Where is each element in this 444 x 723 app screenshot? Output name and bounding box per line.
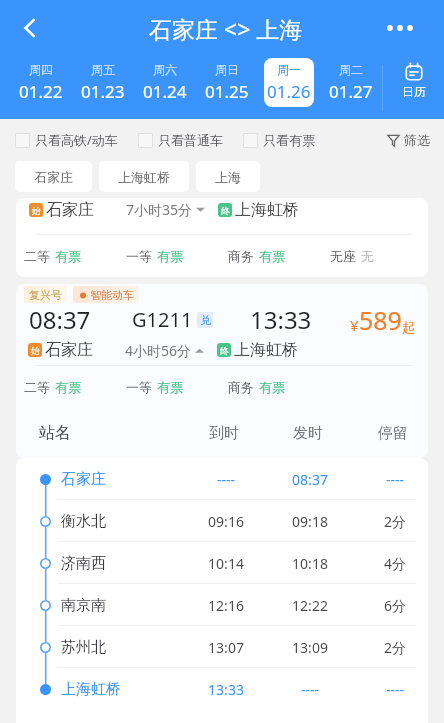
button[interactable]: 始 bbox=[16, 198, 428, 277]
staticText: 13:33 bbox=[198, 680, 254, 699]
staticText: 上海虹桥 bbox=[118, 169, 170, 185]
button[interactable]: 周一 bbox=[264, 58, 314, 107]
staticText: 只看有票 bbox=[263, 132, 315, 148]
staticText: 13:09 bbox=[282, 638, 338, 657]
staticText: 13:07 bbox=[198, 638, 254, 657]
button[interactable]: More options bbox=[384, 12, 416, 44]
staticText: 有票 bbox=[259, 248, 285, 264]
button[interactable]: 复兴号 bbox=[16, 284, 428, 458]
button[interactable]: Back bbox=[10, 8, 50, 48]
staticText: G1211 bbox=[132, 306, 193, 333]
button[interactable]: 石家庄 bbox=[16, 458, 428, 500]
staticText: 商务 bbox=[228, 248, 254, 264]
staticText: 6分 bbox=[367, 596, 423, 615]
staticText: 有票 bbox=[55, 248, 81, 264]
staticText: ---- bbox=[367, 470, 423, 489]
staticText: 停留 bbox=[365, 424, 421, 443]
staticText: 10:18 bbox=[282, 554, 338, 573]
staticText: 4小时56分 bbox=[125, 341, 192, 360]
staticText: 01.24 bbox=[143, 80, 187, 103]
staticText: ¥ bbox=[350, 315, 359, 335]
staticText: 01.26 bbox=[267, 80, 311, 103]
button[interactable]: 南京南 bbox=[16, 584, 428, 626]
staticText: 589 bbox=[359, 303, 402, 335]
staticText: 石家庄 <> 上海 bbox=[149, 13, 303, 44]
staticText: ---- bbox=[282, 680, 338, 699]
staticText: 一等 bbox=[126, 379, 152, 395]
staticText: 始 bbox=[32, 205, 41, 216]
button[interactable]: 上海虹桥 bbox=[16, 668, 428, 710]
staticText: 苏州北 bbox=[61, 638, 106, 657]
staticText: 10:14 bbox=[198, 554, 254, 573]
staticText: 4分 bbox=[367, 554, 423, 573]
staticText: 上海虹桥 bbox=[61, 680, 121, 699]
staticText: 有票 bbox=[55, 379, 81, 395]
staticText: 二等 bbox=[24, 248, 50, 264]
staticText: 13:33 bbox=[250, 303, 312, 335]
staticText: 到时 bbox=[196, 424, 252, 443]
staticText: 始 bbox=[31, 345, 40, 356]
staticText: 09:16 bbox=[198, 512, 254, 531]
button[interactable]: 衡水北 bbox=[16, 500, 428, 542]
staticText: 起 bbox=[402, 319, 415, 335]
staticText: 12:22 bbox=[282, 596, 338, 615]
staticText: 二等 bbox=[24, 379, 50, 395]
button[interactable]: 只看普通车 bbox=[138, 132, 223, 148]
staticText: 石家庄 bbox=[34, 169, 73, 185]
staticText: 01.23 bbox=[81, 80, 125, 103]
staticText: 01.27 bbox=[329, 80, 373, 103]
staticText: 衡水北 bbox=[61, 512, 106, 531]
staticText: 只看高铁/动车 bbox=[35, 131, 118, 149]
staticText: 站名 bbox=[39, 423, 71, 443]
button[interactable]: 苏州北 bbox=[16, 626, 428, 668]
staticText: ---- bbox=[367, 680, 423, 699]
staticText: 智能动车 bbox=[90, 288, 134, 302]
staticText: 上海虹桥 bbox=[235, 200, 299, 220]
staticText: 01.22 bbox=[19, 80, 63, 103]
staticText: 周四 bbox=[29, 62, 53, 77]
button[interactable]: 济南西 bbox=[16, 542, 428, 584]
staticText: 复兴号 bbox=[29, 288, 62, 302]
staticText: 无座 bbox=[330, 248, 356, 264]
staticText: 有票 bbox=[157, 248, 183, 264]
staticText: 上海虹桥 bbox=[234, 340, 298, 360]
staticText: 筛选 bbox=[404, 132, 430, 148]
staticText: 周六 bbox=[153, 62, 177, 77]
button[interactable]: 周五 bbox=[78, 58, 128, 107]
staticText: 石家庄 bbox=[46, 200, 94, 220]
staticText: 08:37 bbox=[29, 303, 91, 335]
staticText: 周二 bbox=[339, 62, 363, 77]
staticText: 有票 bbox=[259, 379, 285, 395]
staticText: 7小时35分 bbox=[126, 200, 193, 219]
button[interactable]: 周四 bbox=[16, 58, 66, 107]
staticText: 08:37 bbox=[282, 470, 338, 489]
staticText: 周五 bbox=[91, 62, 115, 77]
staticText: 石家庄 bbox=[45, 340, 93, 360]
button[interactable]: Calendar bbox=[383, 56, 444, 105]
staticText: 周一 bbox=[277, 62, 301, 77]
button[interactable]: 石家庄 bbox=[15, 161, 92, 192]
button[interactable]: 周六 bbox=[140, 58, 190, 107]
staticText: 周日 bbox=[215, 62, 239, 77]
staticText: 终 bbox=[221, 205, 230, 216]
button[interactable]: 只看高铁/动车 bbox=[15, 131, 118, 149]
staticText: 2分 bbox=[367, 512, 423, 531]
staticText: 有票 bbox=[157, 379, 183, 395]
staticText: 2分 bbox=[367, 638, 423, 657]
staticText: 一等 bbox=[126, 248, 152, 264]
staticText: 上海 bbox=[215, 169, 241, 185]
staticText: 12:16 bbox=[198, 596, 254, 615]
staticText: 济南西 bbox=[61, 554, 106, 573]
staticText: 01.25 bbox=[205, 80, 249, 103]
button[interactable]: 上海 bbox=[196, 161, 260, 192]
staticText: 发时 bbox=[280, 424, 336, 443]
staticText: 南京南 bbox=[61, 596, 106, 615]
button[interactable]: 周二 bbox=[326, 58, 376, 107]
staticText: ---- bbox=[198, 470, 254, 489]
staticText: 09:18 bbox=[282, 512, 338, 531]
button[interactable]: 只看有票 bbox=[243, 132, 315, 148]
button[interactable]: 上海虹桥 bbox=[99, 161, 189, 192]
staticText: 兑 bbox=[200, 313, 211, 327]
button[interactable]: 筛选 bbox=[387, 132, 430, 148]
button[interactable]: 周日 bbox=[202, 58, 252, 107]
